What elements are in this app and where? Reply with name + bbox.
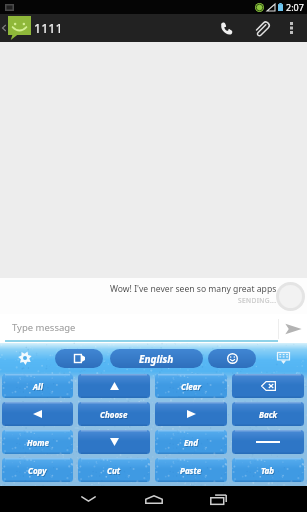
staticText: Home (27, 437, 49, 448)
button[interactable]: Tab (232, 458, 304, 482)
button[interactable]: Home (121, 486, 186, 512)
button[interactable]: Delete (232, 374, 304, 398)
staticText: English (139, 352, 174, 366)
staticText: Cut (107, 465, 121, 476)
button[interactable]: Copy (2, 458, 73, 482)
button[interactable]: Cut (78, 458, 150, 482)
staticText: Copy (29, 466, 48, 477)
button[interactable]: Call (208, 14, 244, 42)
staticText: Back (259, 409, 278, 420)
button[interactable]: More options (280, 14, 302, 42)
staticText: Type message (12, 321, 76, 334)
button[interactable]: End (155, 430, 227, 454)
staticText: 2:07 (286, 1, 304, 13)
staticText: Cut (108, 466, 122, 477)
staticText: Choose (100, 409, 128, 420)
staticText: Wow! I've never seen so many great apps (110, 283, 277, 295)
staticText: End (185, 438, 199, 449)
button[interactable]: Recent apps (186, 486, 251, 512)
button[interactable]: Emoji (208, 349, 256, 368)
button[interactable]: Hide keyboard (56, 486, 121, 512)
button[interactable]: Left (2, 402, 73, 426)
staticText: End (184, 437, 198, 448)
staticText: Paste (181, 466, 203, 477)
button[interactable]: Down (78, 430, 150, 454)
staticText: SENDING... (238, 296, 277, 305)
button[interactable]: Home (2, 430, 73, 454)
button[interactable]: Clear (155, 374, 227, 398)
button[interactable]: Send (279, 314, 307, 343)
button[interactable]: Space (232, 430, 304, 454)
staticText: Clear (181, 381, 201, 392)
button[interactable]: Keyboard settings (10, 348, 40, 368)
button[interactable]: Right (155, 402, 227, 426)
button[interactable]: Back (232, 402, 304, 426)
staticText: 1111 (34, 20, 63, 37)
button[interactable]: Hide keyboard (270, 348, 296, 368)
staticText: Home (28, 438, 50, 449)
staticText: Tab (262, 466, 276, 477)
button[interactable]: Paste (155, 458, 227, 482)
staticText: Clear (182, 382, 202, 393)
staticText: Copy (28, 465, 47, 476)
staticText: Paste (180, 465, 202, 476)
staticText: Choose (101, 410, 129, 421)
staticText: Tab (261, 465, 275, 476)
button[interactable]: Choose (78, 402, 150, 426)
button[interactable]: Attach (243, 14, 279, 42)
staticText: All (34, 382, 44, 393)
button[interactable]: All (2, 374, 73, 398)
button[interactable]: English (110, 349, 203, 368)
staticText: All (33, 381, 43, 392)
button[interactable]: Voice input (55, 349, 103, 368)
button[interactable]: Up (78, 374, 150, 398)
staticText: Back (260, 410, 279, 421)
